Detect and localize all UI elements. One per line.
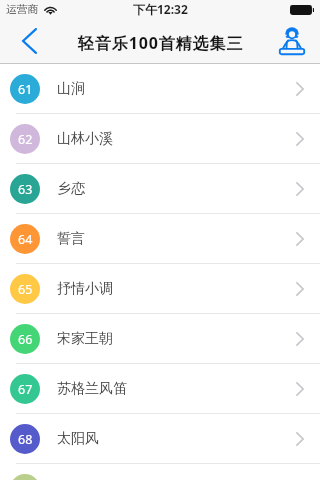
staticText: 山涧 (57, 80, 85, 98)
button[interactable]: 69 (0, 464, 320, 480)
staticText: 乡恋 (57, 180, 85, 198)
staticText: 下午12:32 (133, 1, 188, 17)
button[interactable]: 63 (0, 164, 320, 214)
staticText: 68 (18, 431, 33, 448)
staticText: 64 (18, 231, 33, 248)
button[interactable]: Back (0, 20, 50, 64)
staticText: 誓言 (57, 230, 85, 248)
button[interactable]: 68 (0, 414, 320, 464)
staticText: 苏格兰风笛 (57, 380, 127, 398)
staticText: 63 (18, 181, 33, 198)
staticText: 太阳风 (57, 430, 99, 448)
staticText: 67 (18, 381, 33, 398)
button[interactable]: 66 (0, 314, 320, 364)
staticText: 运营商 (6, 3, 39, 17)
staticText: 宋家王朝 (57, 330, 113, 348)
button[interactable]: 62 (0, 114, 320, 164)
button[interactable]: 64 (0, 214, 320, 264)
staticText: 山林小溪 (57, 130, 113, 148)
button[interactable]: 65 (0, 264, 320, 314)
staticText: 65 (18, 281, 33, 298)
button[interactable]: 67 (0, 364, 320, 414)
button[interactable]: 61 (0, 64, 320, 114)
staticText: 抒情小调 (57, 280, 113, 298)
staticText: 61 (18, 81, 33, 98)
staticText: 62 (18, 131, 33, 148)
staticText: 66 (18, 331, 33, 348)
staticText: 轻音乐100首精选集三 (78, 32, 244, 54)
button[interactable]: Meditation profile (275, 20, 320, 64)
